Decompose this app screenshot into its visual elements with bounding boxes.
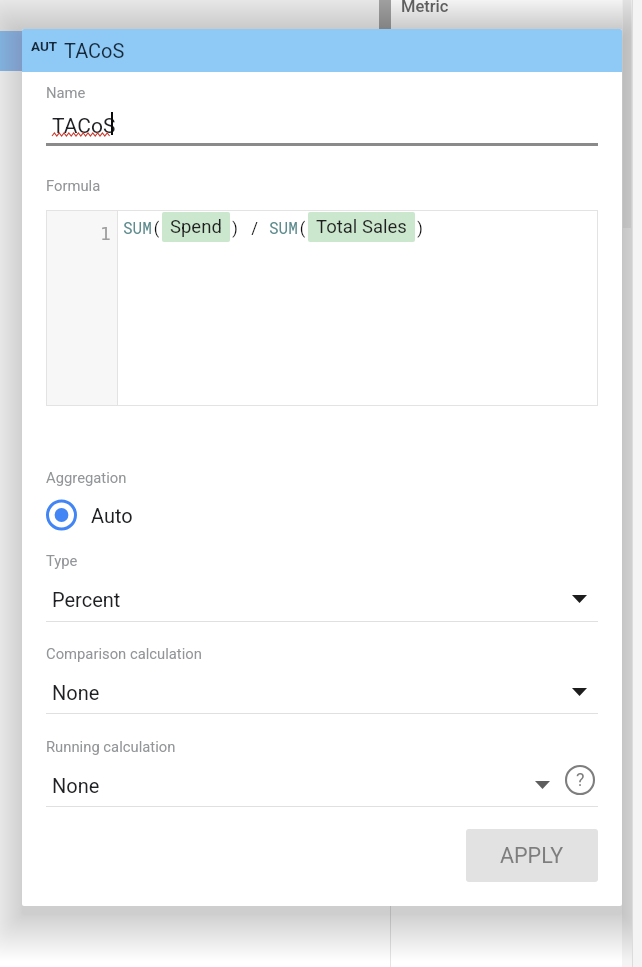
staticText: TACoS	[64, 39, 125, 62]
staticText: Comparison calculation	[46, 645, 202, 662]
staticText: SUM	[269, 217, 298, 238]
staticText: (	[298, 217, 308, 238]
staticText: Metric	[401, 0, 449, 16]
staticText: 1	[100, 223, 111, 244]
staticText: Auto	[91, 504, 133, 527]
button[interactable]: Help	[565, 765, 595, 795]
staticText: )	[415, 217, 425, 238]
staticText: Total Sales	[316, 216, 407, 238]
button[interactable]: 1	[46, 210, 598, 406]
staticText: Percent	[52, 588, 121, 611]
staticText: Type	[46, 552, 78, 569]
staticText: Spend	[170, 216, 222, 238]
staticText: (	[152, 217, 162, 238]
button[interactable]: None	[46, 675, 587, 709]
button[interactable]: Percent	[46, 582, 587, 616]
staticText: Formula	[46, 177, 101, 194]
staticText: SUM	[123, 217, 152, 238]
staticText: /	[240, 217, 269, 238]
staticText: None	[52, 681, 100, 704]
staticText: TACoS	[52, 114, 116, 139]
staticText: None	[52, 774, 100, 797]
staticText: ?	[576, 769, 585, 790]
button[interactable]: Auto	[39, 495, 133, 535]
button[interactable]: None	[46, 768, 550, 802]
staticText: Name	[46, 84, 86, 101]
staticText: APPLY	[500, 843, 564, 868]
staticText: )	[230, 217, 240, 238]
staticText: Running calculation	[46, 738, 176, 755]
button[interactable]: APPLY	[466, 829, 598, 882]
staticText: AUT	[31, 38, 58, 54]
button[interactable]: AUT	[22, 29, 622, 72]
staticText: Aggregation	[46, 469, 127, 486]
